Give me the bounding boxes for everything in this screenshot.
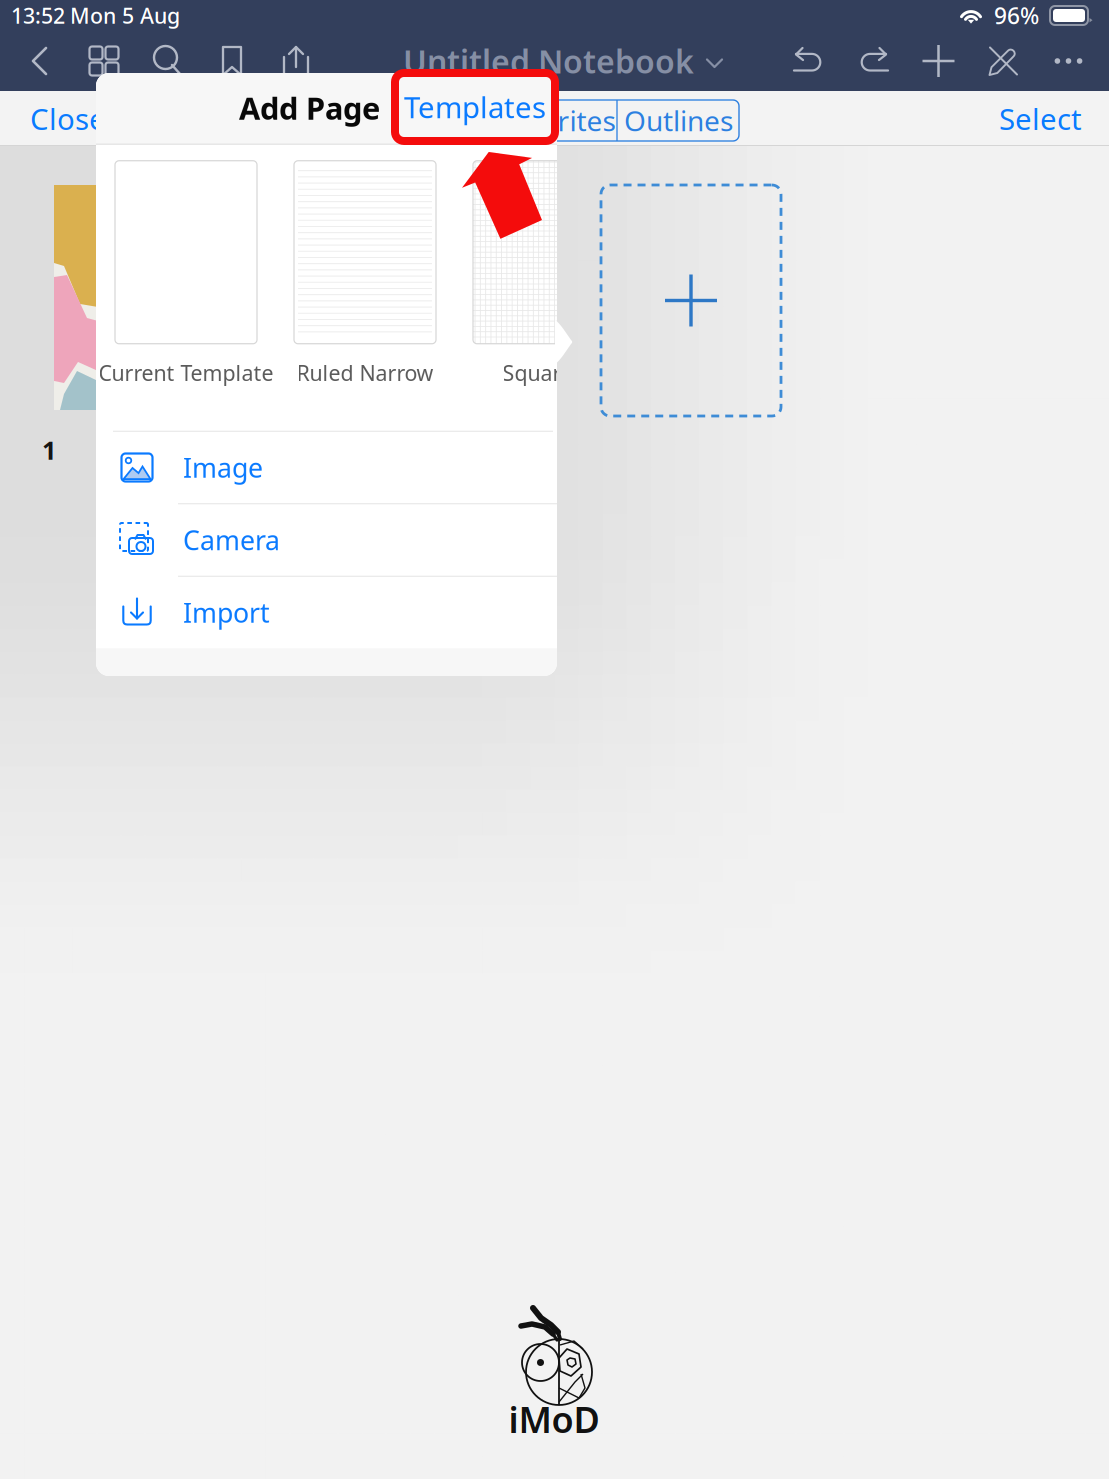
- staticText: Outlines: [624, 102, 733, 139]
- staticText: Templates: [404, 87, 546, 126]
- button[interactable]: Redo: [841, 31, 906, 91]
- button[interactable]: Outlines: [618, 100, 739, 141]
- button[interactable]: Ruled Narrow: [294, 161, 436, 421]
- staticText: Select: [999, 99, 1082, 138]
- button[interactable]: Favorites: [495, 100, 616, 141]
- button[interactable]: Bookmark: [200, 31, 264, 91]
- staticText: 96%: [994, 0, 1039, 30]
- button[interactable]: Share: [264, 31, 328, 91]
- button[interactable]: Add page: [601, 185, 781, 416]
- staticText: Image: [183, 450, 263, 485]
- button[interactable]: Back: [8, 31, 72, 91]
- staticText: 1: [42, 433, 56, 467]
- staticText: Ruled Narrow: [296, 359, 433, 387]
- staticText: Squared: [502, 359, 585, 387]
- button[interactable]: Squared: [473, 161, 615, 421]
- button[interactable]: Current Template: [115, 161, 257, 421]
- button[interactable]: More: [1036, 31, 1101, 91]
- button[interactable]: Add: [906, 31, 971, 91]
- staticText: iMoD: [508, 1395, 599, 1443]
- staticText: 13:52: [11, 1, 65, 30]
- button[interactable]: Hide pen: [971, 31, 1036, 91]
- button[interactable]: Image: [96, 432, 557, 504]
- button[interactable]: Search: [136, 31, 200, 91]
- staticText: Close: [30, 99, 106, 138]
- button[interactable]: Close: [30, 91, 130, 146]
- button[interactable]: Untitled Notebook: [383, 31, 743, 91]
- staticText: Camera: [183, 522, 280, 558]
- button[interactable]: Undo: [776, 31, 841, 91]
- staticText: Import: [183, 595, 270, 630]
- staticText: Favorites: [496, 102, 616, 139]
- button[interactable]: Select: [972, 91, 1082, 146]
- button[interactable]: Camera: [96, 504, 557, 577]
- button[interactable]: Pages: [72, 31, 136, 91]
- staticText: Add Page: [239, 87, 380, 128]
- button[interactable]: Import: [96, 577, 557, 648]
- staticText: Mon 5 Aug: [70, 1, 180, 30]
- button[interactable]: Templates: [395, 81, 555, 133]
- staticText: Current Template: [98, 359, 273, 387]
- staticText: Untitled Notebook: [403, 40, 694, 82]
